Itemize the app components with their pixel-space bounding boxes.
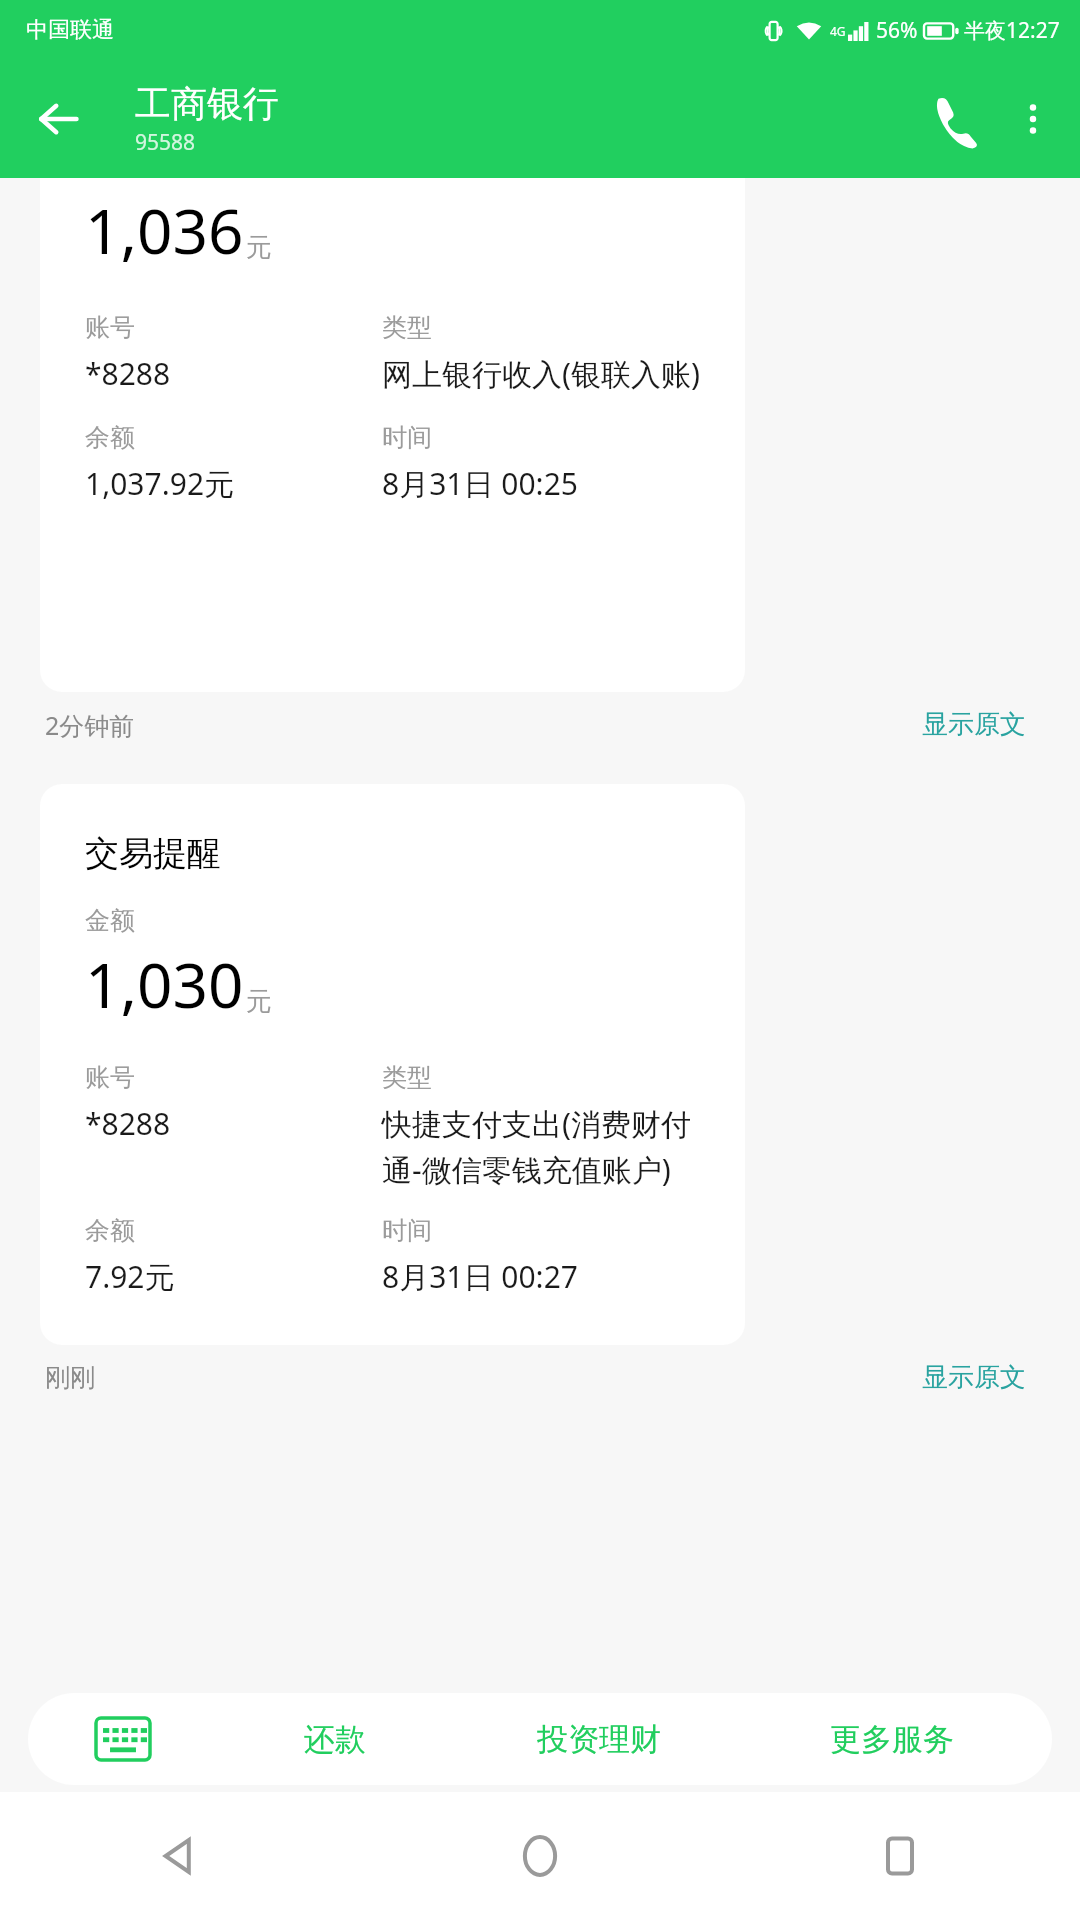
- staticText: 账号: [85, 312, 135, 343]
- staticText: 8月31日 00:25: [382, 463, 578, 504]
- button[interactable]: 投资理财: [452, 1693, 745, 1785]
- staticText: 8月31日 00:27: [382, 1256, 578, 1297]
- staticText: 显示原文: [922, 708, 1026, 741]
- staticText: 类型: [382, 1062, 432, 1093]
- staticText: 7.92元: [85, 1256, 175, 1297]
- staticText: 账号: [85, 1062, 135, 1093]
- button[interactable]: 交易提醒: [40, 784, 745, 1345]
- button[interactable]: Back: [0, 1792, 360, 1920]
- staticText: 更多服务: [830, 1720, 954, 1759]
- staticText: 类型: [382, 312, 432, 343]
- staticText: 元: [246, 985, 272, 1018]
- staticText: 工商银行: [135, 81, 279, 126]
- staticText: 4G: [830, 23, 846, 39]
- staticText: 2分钟前: [45, 708, 135, 742]
- staticText: 金额: [85, 905, 135, 936]
- staticText: 元: [246, 231, 272, 264]
- staticText: 半夜12:27: [964, 16, 1060, 45]
- button[interactable]: 还款: [218, 1693, 452, 1785]
- button[interactable]: 更多服务: [745, 1693, 1038, 1785]
- staticText: 1,037.92元: [85, 463, 235, 504]
- staticText: 时间: [382, 1215, 432, 1246]
- staticText: 还款: [304, 1720, 366, 1759]
- button[interactable]: Call: [912, 76, 998, 162]
- staticText: *8288: [85, 353, 171, 394]
- staticText: 网上银行收入(银联入账): [382, 353, 700, 394]
- button[interactable]: More options: [998, 84, 1068, 154]
- button[interactable]: 显示原文: [916, 702, 1032, 747]
- staticText: 显示原文: [922, 1361, 1026, 1394]
- button[interactable]: Keyboard: [28, 1693, 218, 1785]
- staticText: 时间: [382, 422, 432, 453]
- staticText: 交易提醒: [85, 832, 221, 875]
- button[interactable]: Back: [20, 81, 96, 157]
- staticText: *8288: [85, 1103, 171, 1144]
- staticText: 投资理财: [537, 1720, 661, 1759]
- staticText: 56%: [876, 16, 918, 45]
- button[interactable]: 显示原文: [916, 1355, 1032, 1400]
- staticText: 95588: [135, 128, 196, 157]
- button[interactable]: Recents: [720, 1792, 1080, 1920]
- staticText: 余额: [85, 422, 135, 453]
- button[interactable]: Home: [360, 1792, 720, 1920]
- staticText: 中国联通: [26, 16, 114, 44]
- staticText: 1,030: [85, 942, 244, 1026]
- staticText: 1,036: [85, 188, 244, 272]
- staticText: 余额: [85, 1215, 135, 1246]
- button[interactable]: 1,036: [40, 178, 745, 692]
- staticText: 快捷支付支出(消费财付通-微信零钱充值账户): [382, 1103, 723, 1189]
- staticText: 刚刚: [45, 1362, 95, 1393]
